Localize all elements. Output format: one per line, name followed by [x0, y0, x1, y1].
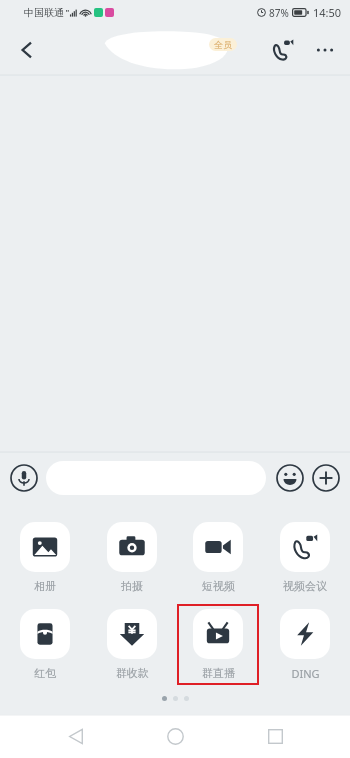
button[interactable]: 群收款 [91, 604, 173, 685]
staticText: 短视频 [202, 579, 235, 593]
button[interactable]: 红包 [4, 604, 86, 685]
button[interactable]: More actions [310, 462, 342, 494]
button[interactable] [46, 461, 266, 495]
button[interactable]: 相册 [4, 517, 86, 598]
button[interactable]: More options [304, 29, 346, 71]
staticText: 视频会议 [283, 579, 327, 593]
button[interactable]: Emoji [274, 462, 306, 494]
button[interactable]: Back [52, 715, 100, 758]
staticText: 红包 [34, 666, 56, 680]
button[interactable]: 视频会议 [264, 517, 346, 598]
staticText: 14:50 [313, 5, 342, 20]
staticText: 全员 [214, 39, 232, 50]
button[interactable]: Video call [262, 29, 304, 71]
button[interactable]: 群直播 [177, 604, 259, 685]
staticText: 87% [269, 6, 289, 20]
staticText: 中国联通 [24, 6, 64, 19]
button[interactable]: 拍摄 [91, 517, 173, 598]
staticText: 群直播 [202, 666, 235, 680]
button[interactable]: Back [6, 29, 48, 71]
button[interactable]: DING [264, 604, 346, 686]
staticText: DING [291, 666, 320, 681]
button[interactable]: Voice message [8, 462, 40, 494]
staticText: 拍摄 [121, 579, 143, 593]
staticText: 群收款 [116, 666, 149, 680]
staticText: 相册 [34, 579, 56, 593]
button[interactable]: Recents [251, 715, 299, 758]
button[interactable]: Home [151, 715, 199, 758]
button[interactable]: 短视频 [177, 517, 259, 598]
